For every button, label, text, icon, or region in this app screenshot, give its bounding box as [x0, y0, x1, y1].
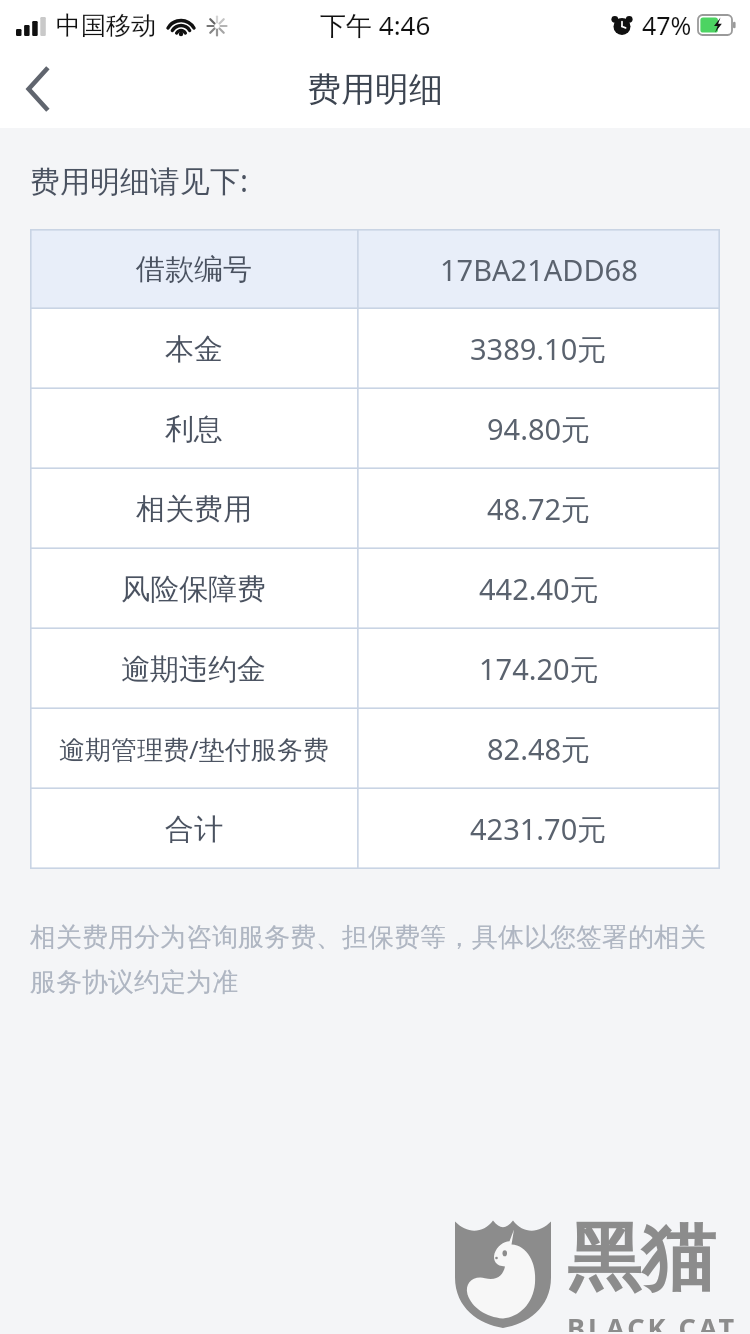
staticText: 94.80元	[487, 409, 591, 449]
staticText: 本金	[165, 331, 223, 368]
staticText: 82.48元	[487, 729, 591, 769]
staticText: 逾期违约金	[121, 651, 266, 688]
staticText: BLACK CAT	[567, 1309, 738, 1332]
button[interactable]: 相关费用	[30, 469, 720, 549]
button[interactable]: 本金	[30, 309, 720, 389]
staticText: 4231.70元	[470, 809, 607, 849]
staticText: 17BA21ADD68	[440, 250, 638, 289]
staticText: 47%	[642, 8, 692, 42]
staticText: 相关费用分为咨询服务费、担保费等，具体以您签署的相关服务协议约定为准	[30, 921, 710, 998]
staticText: 合计	[165, 811, 223, 848]
staticText: 中国移动	[56, 10, 156, 41]
staticText: 逾期管理费/垫付服务费	[59, 731, 329, 767]
button[interactable]: 利息	[30, 389, 720, 469]
staticText: 利息	[165, 411, 223, 448]
button[interactable]: 逾期管理费/垫付服务费	[30, 709, 720, 789]
staticText: 48.72元	[487, 489, 591, 529]
staticText: 费用明细	[307, 68, 443, 111]
staticText: 3389.10元	[470, 329, 607, 369]
staticText: 相关费用	[136, 491, 252, 528]
button[interactable]: 风险保障费	[30, 549, 720, 629]
button[interactable]: 借款编号	[30, 229, 720, 309]
staticText: 174.20元	[479, 649, 599, 689]
staticText: 费用明细请见下:	[30, 160, 249, 201]
button[interactable]: 合计	[30, 789, 720, 869]
staticText: 442.40元	[479, 569, 599, 609]
button[interactable]: 逾期违约金	[30, 629, 720, 709]
staticText: 借款编号	[136, 251, 252, 288]
button[interactable]: 返回	[0, 50, 76, 128]
staticText: 下午 4:46	[320, 7, 431, 43]
staticText: 黑猫	[567, 1212, 715, 1305]
staticText: 风险保障费	[121, 571, 266, 608]
